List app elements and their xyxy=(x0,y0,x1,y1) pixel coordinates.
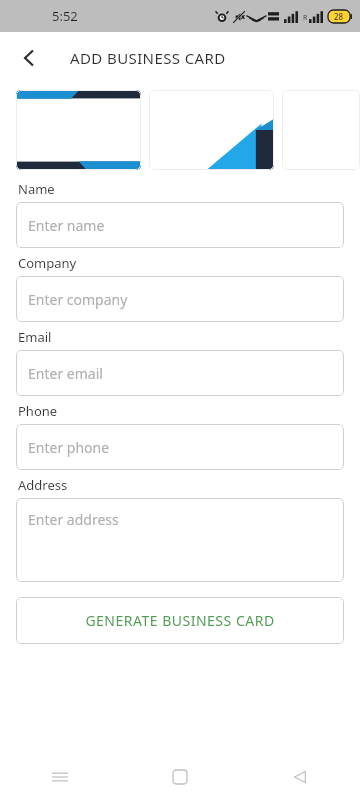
staticText: 5:52 xyxy=(52,7,78,25)
button[interactable]: Enter email xyxy=(16,350,344,396)
staticText: Enter name xyxy=(28,216,105,235)
button[interactable]: Template 1 xyxy=(16,90,141,170)
staticText: Company xyxy=(18,254,77,272)
button[interactable]: GENERATE BUSINESS CARD xyxy=(16,597,344,644)
staticText: Email xyxy=(18,328,52,346)
button[interactable]: Enter address xyxy=(16,498,344,582)
staticText: GENERATE BUSINESS CARD xyxy=(85,611,275,630)
button[interactable]: Template 3 xyxy=(282,90,360,170)
staticText: Enter email xyxy=(28,364,103,383)
button[interactable]: Recent apps xyxy=(0,754,120,800)
staticText: ADD BUSINESS CARD xyxy=(70,48,226,68)
staticText: Enter company xyxy=(28,290,128,309)
staticText: 28 xyxy=(334,11,344,22)
staticText: Address xyxy=(18,476,68,494)
button[interactable]: Back xyxy=(240,754,360,800)
staticText: Enter phone xyxy=(28,438,110,457)
button[interactable]: Enter name xyxy=(16,202,344,248)
button[interactable]: Home xyxy=(120,754,240,800)
button[interactable]: Template 2 xyxy=(149,90,274,170)
button[interactable]: Enter company xyxy=(16,276,344,322)
button[interactable]: Back xyxy=(8,37,50,79)
button[interactable]: Enter phone xyxy=(16,424,344,470)
staticText: Phone xyxy=(18,402,58,420)
staticText: Enter address xyxy=(28,510,119,529)
staticText: Name xyxy=(18,180,55,198)
staticText: R xyxy=(303,13,308,23)
